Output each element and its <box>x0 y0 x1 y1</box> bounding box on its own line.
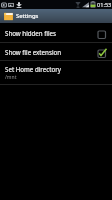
button[interactable]: Set Home directory <box>0 61 112 84</box>
button[interactable]: Show hidden files <box>0 23 112 42</box>
other: Checked <box>97 47 107 57</box>
staticText: Set Home directory <box>5 65 61 73</box>
staticText: Show hidden files <box>5 29 97 37</box>
staticText: 01:53 <box>97 1 112 9</box>
other: Unchecked <box>97 28 107 38</box>
button[interactable]: Show file extension <box>0 43 112 60</box>
staticText: Settings <box>16 12 39 20</box>
staticText: /mnt <box>5 74 17 81</box>
staticText: Show file extension <box>5 48 97 56</box>
